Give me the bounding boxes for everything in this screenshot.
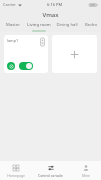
staticText: Mine [82, 173, 90, 178]
staticText: lamp1 [7, 38, 19, 43]
button[interactable]: Toggle lamp1 [19, 62, 33, 70]
staticText: Control console [38, 173, 63, 178]
button[interactable]: Mine [70, 161, 101, 180]
button[interactable]: Bedro [80, 20, 101, 32]
staticText: 6:16 PM [47, 2, 63, 7]
staticText: Vmax [42, 11, 59, 19]
button[interactable]: Power [7, 62, 15, 70]
other: Device [40, 38, 45, 46]
button[interactable]: lamp1 [4, 35, 48, 73]
button[interactable]: Master [0, 20, 25, 32]
staticText: Master [6, 22, 20, 28]
staticText: Bedro [85, 22, 97, 28]
staticText: Homepage [7, 173, 25, 178]
button[interactable]: Living room [25, 20, 53, 32]
staticText: Dining hall [56, 22, 78, 28]
button[interactable]: Dining hall [53, 20, 80, 32]
button[interactable]: Homepage [0, 161, 31, 180]
staticText: Living room [27, 22, 51, 28]
button[interactable]: Add device [52, 35, 97, 73]
staticText: Carrier [3, 2, 17, 7]
button[interactable]: Control console [31, 161, 70, 180]
